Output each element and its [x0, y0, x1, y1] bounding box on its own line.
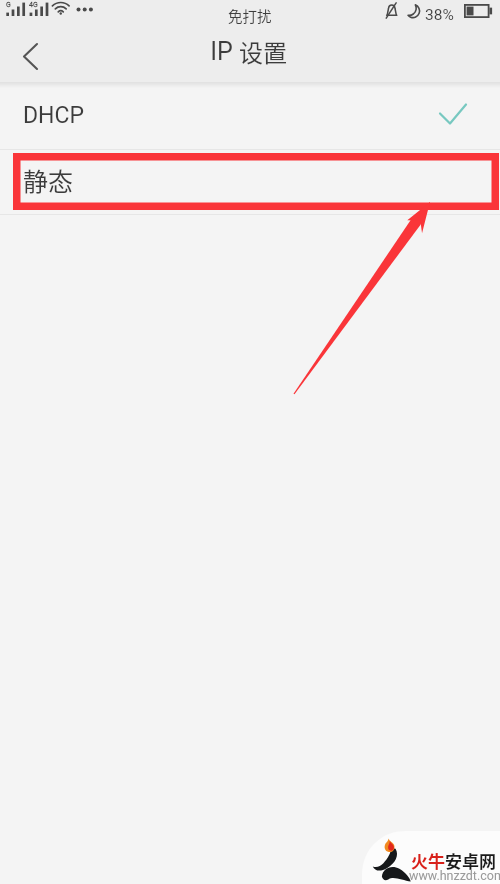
button[interactable]: 静态	[0, 150, 500, 214]
staticText: 免打扰	[228, 5, 272, 26]
staticText: 火牛	[411, 848, 445, 873]
staticText: 静态	[23, 162, 74, 198]
button[interactable]: DHCP	[0, 82, 500, 149]
staticText: DHCP	[23, 102, 84, 129]
staticText: 设置	[239, 34, 287, 69]
staticText: 38%	[425, 6, 454, 24]
button[interactable]: Back	[0, 30, 56, 82]
staticText: IP	[210, 37, 233, 66]
staticText: G	[6, 1, 11, 9]
staticText: www.hnzzdt.com	[409, 868, 500, 883]
staticText: 安卓网	[445, 848, 496, 873]
staticText: 4G	[29, 1, 38, 9]
